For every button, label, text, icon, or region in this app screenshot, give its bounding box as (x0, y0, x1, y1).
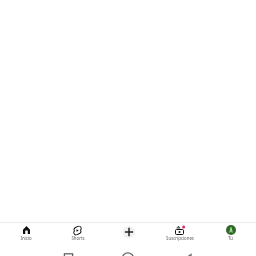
staticText: Inicio (20, 235, 32, 241)
button[interactable]: Suscripciones (154, 223, 205, 252)
button[interactable]: Tú (205, 223, 256, 252)
staticText: Suscripciones (166, 235, 194, 241)
button[interactable]: Shorts (52, 223, 103, 252)
button[interactable]: Crear (103, 223, 154, 252)
staticText: Shorts (71, 235, 85, 241)
staticText: Tú (228, 235, 233, 241)
button[interactable]: Inicio (0, 223, 52, 252)
